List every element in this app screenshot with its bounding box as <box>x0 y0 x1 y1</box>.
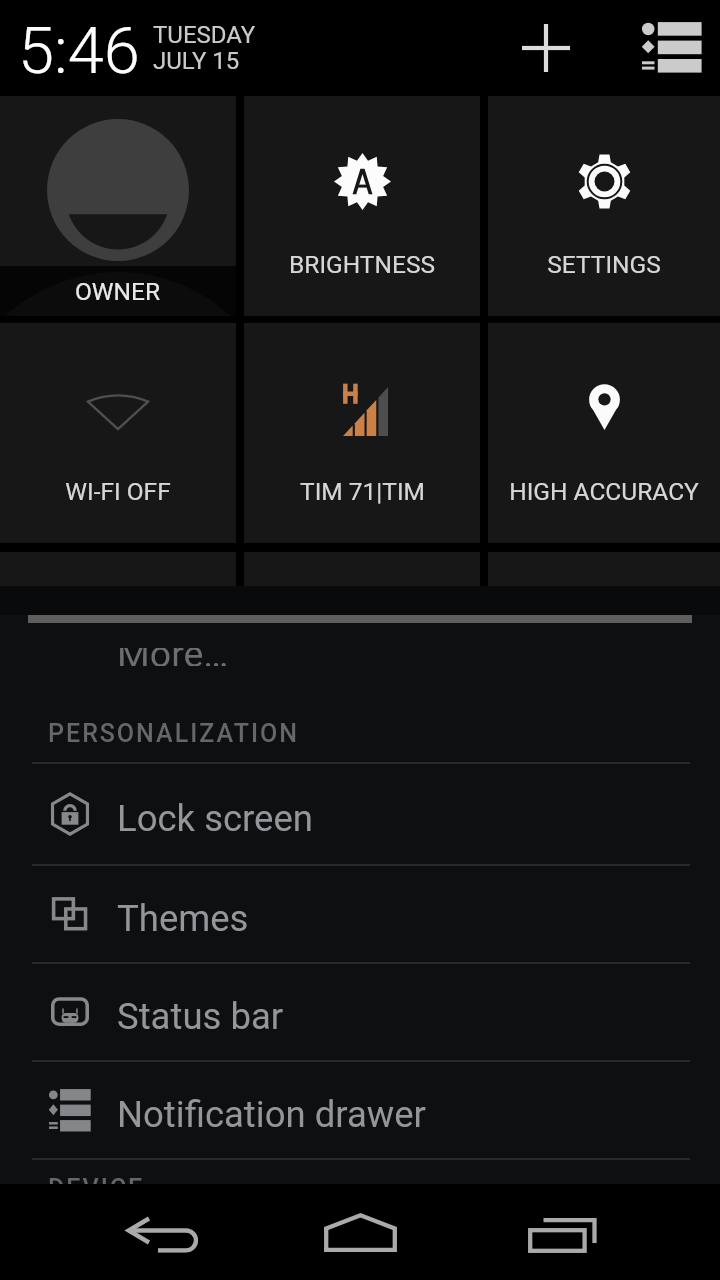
button[interactable]: HIGH ACCURACY <box>488 323 720 543</box>
button[interactable]: Home <box>280 1184 440 1280</box>
button[interactable]: Notification drawer <box>0 1062 720 1158</box>
staticText: Lock screen <box>117 797 313 840</box>
staticText: Themes <box>117 897 249 940</box>
staticText: 5:46 <box>18 13 140 89</box>
staticText: More… <box>117 648 229 666</box>
button[interactable]: BRIGHTNESS <box>244 96 480 316</box>
staticText: BRIGHTNESS <box>289 250 435 279</box>
staticText: TUESDAY <box>153 21 256 49</box>
button[interactable]: Recent apps <box>482 1184 642 1280</box>
staticText: DEVICE <box>48 1174 145 1203</box>
staticText: SETTINGS <box>547 250 661 279</box>
button[interactable]: TIM 71|TIM <box>244 323 480 543</box>
button[interactable]: Lock screen <box>0 764 720 864</box>
staticText: Status bar <box>117 995 284 1038</box>
button[interactable]: SETTINGS <box>488 96 720 316</box>
button[interactable]: OWNER <box>0 96 236 316</box>
button[interactable]: Add tile <box>498 0 594 96</box>
staticText: Notification drawer <box>117 1093 426 1136</box>
button[interactable]: Themes <box>0 866 720 962</box>
button[interactable]: Back <box>80 1184 240 1280</box>
staticText: OWNER <box>75 277 161 306</box>
button[interactable]: WI-FI OFF <box>0 323 236 543</box>
button[interactable]: Notifications <box>624 0 716 96</box>
staticText: HIGH ACCURACY <box>509 477 699 506</box>
staticText: JULY 15 <box>153 47 240 75</box>
button[interactable]: Status bar <box>0 964 720 1060</box>
staticText: PERSONALIZATION <box>48 719 299 748</box>
staticText: TIM 71|TIM <box>300 477 425 506</box>
staticText: WI-FI OFF <box>65 477 171 506</box>
